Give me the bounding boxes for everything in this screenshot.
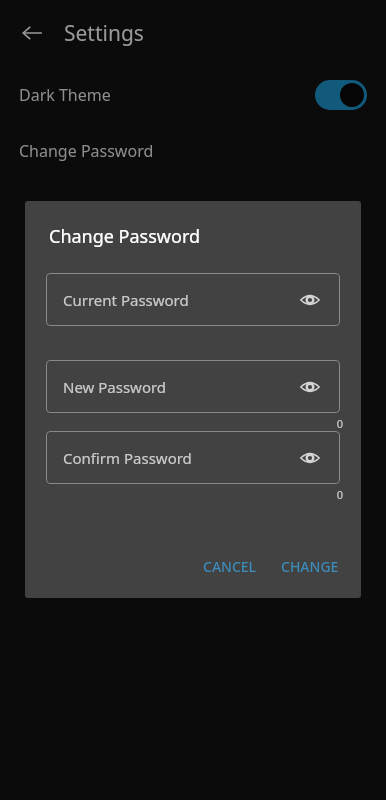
button[interactable]: Back	[10, 11, 54, 55]
staticText: New Password	[63, 377, 167, 397]
button[interactable]: Toggle password visibility	[297, 287, 323, 313]
button[interactable]: Dark Theme toggle	[315, 80, 367, 110]
staticText: Change Password	[49, 224, 201, 249]
staticText: Settings	[64, 19, 144, 48]
button[interactable]: Confirm Password	[46, 431, 340, 484]
button[interactable]: Toggle password visibility	[297, 374, 323, 400]
button[interactable]: CHANGE	[273, 551, 347, 582]
staticText: 0	[336, 487, 343, 502]
staticText: 0	[336, 416, 343, 431]
staticText: Change Password	[19, 140, 154, 162]
staticText: Dark Theme	[19, 84, 111, 106]
button[interactable]: New Password	[46, 360, 340, 413]
button[interactable]: CANCEL	[195, 551, 265, 582]
button[interactable]: Current Password	[46, 273, 340, 326]
staticText: CANCEL	[203, 557, 257, 576]
staticText: Current Password	[63, 290, 189, 310]
staticText: Confirm Password	[63, 448, 192, 468]
staticText: CHANGE	[281, 557, 339, 576]
button[interactable]: Dark Theme	[0, 68, 386, 122]
button[interactable]: Change Password	[0, 126, 386, 176]
button[interactable]: Toggle password visibility	[297, 445, 323, 471]
